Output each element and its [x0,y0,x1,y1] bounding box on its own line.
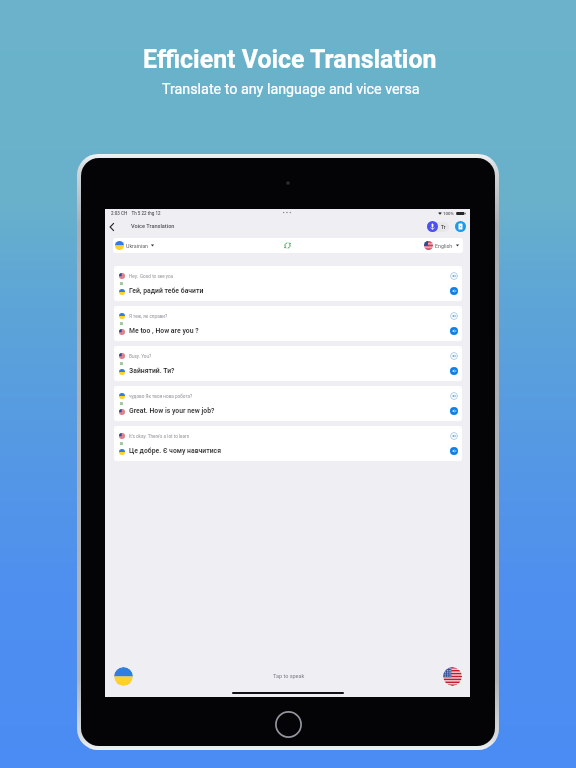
button[interactable]: Play translation [450,367,458,375]
staticText: 100% [443,211,454,216]
button[interactable]: Play translation [450,287,458,295]
button[interactable]: Swap languages [283,241,292,250]
staticText: Hey, Good to see you [129,274,174,279]
button[interactable]: Conversation mode [455,221,466,232]
staticText: Гей, радий тебе бачити [129,287,204,295]
button[interactable]: Play original [450,272,458,280]
staticText: Ukrainian [126,243,148,249]
staticText: Tr [441,225,446,230]
staticText: Зайнятий. Ти? [129,367,175,375]
button[interactable]: Play original [450,312,458,320]
button[interactable]: чудово Як твоя нова робота? [114,386,462,421]
button[interactable]: It's okay. There's a lot to learn [114,426,462,461]
staticText: Tap to speak [273,673,305,679]
button[interactable]: Speak English [443,667,462,686]
button[interactable]: Hey, Good to see you [114,266,462,301]
button[interactable]: Play translation [450,327,458,335]
button[interactable]: Tr [427,222,449,232]
button[interactable]: Play translation [450,407,458,415]
button[interactable]: Busy. You? [114,346,462,381]
staticText: чудово Як твоя нова робота? [129,394,193,399]
staticText: Translate to any language and vice versa [162,81,420,98]
staticText: Це добре. Є чому навчитися [129,447,221,455]
staticText: English [435,243,453,249]
staticText: Great. How is your new job? [129,407,215,415]
staticText: Я теж, як справи? [129,314,168,319]
button[interactable]: Voice input [427,221,438,232]
button[interactable]: Ukrainian [115,241,155,250]
staticText: Voice Translation [131,223,175,230]
button[interactable]: Play original [450,392,458,400]
button[interactable]: English [424,241,460,250]
button[interactable]: Play translation [450,447,458,455]
staticText: 2:03 CH Th 5 22 thg 12 [111,211,161,216]
button[interactable]: Play original [450,432,458,440]
button[interactable]: Speak Ukrainian [114,667,133,686]
staticText: Efficient Voice Translation [143,45,437,74]
staticText: It's okay. There's a lot to learn [129,434,190,439]
staticText: Busy. You? [129,354,152,359]
button[interactable]: Я теж, як справи? [114,306,462,341]
button[interactable]: Play original [450,352,458,360]
staticText: Me too , How are you ? [129,327,199,335]
button[interactable]: Back [107,220,117,234]
